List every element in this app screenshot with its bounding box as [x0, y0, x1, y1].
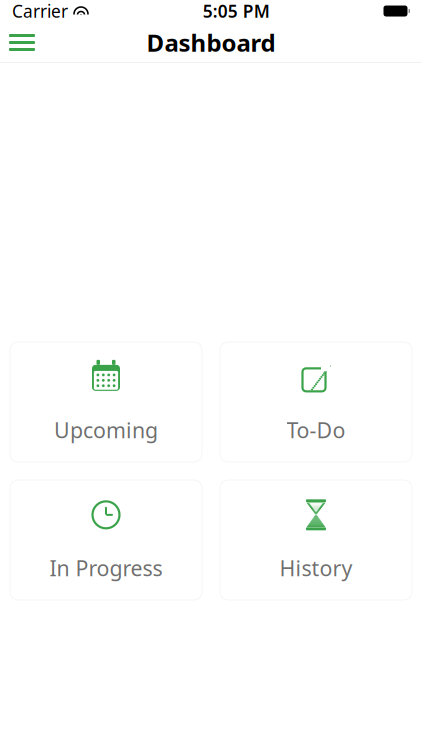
- staticText: Carrier: [12, 0, 68, 22]
- button[interactable]: History: [220, 480, 412, 600]
- button[interactable]: To-Do: [220, 342, 412, 462]
- button[interactable]: Menu: [0, 22, 44, 63]
- staticText: 5:05 PM: [203, 0, 270, 22]
- staticText: To-Do: [286, 416, 345, 444]
- staticText: In Progress: [49, 554, 162, 582]
- button[interactable]: Upcoming: [10, 342, 202, 462]
- staticText: Upcoming: [54, 416, 158, 444]
- staticText: Dashboard: [146, 27, 275, 58]
- button[interactable]: In Progress: [10, 480, 202, 600]
- staticText: History: [279, 554, 352, 582]
